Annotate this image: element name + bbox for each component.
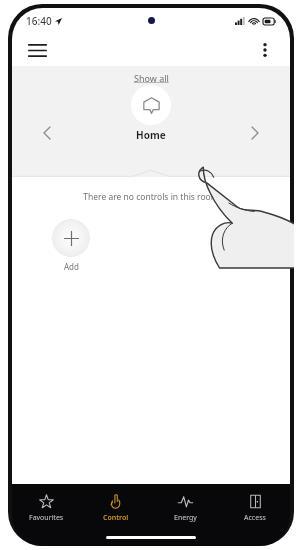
button[interactable]: Favourites — [12, 484, 81, 532]
button[interactable]: Menu — [22, 35, 52, 65]
staticText: There are no controls in this room — [83, 191, 219, 203]
button[interactable]: Control — [81, 484, 150, 532]
staticText: Energy — [174, 513, 197, 523]
staticText: Control — [103, 513, 129, 523]
button[interactable]: Home — [131, 85, 171, 125]
staticText: Favourites — [29, 513, 64, 523]
button[interactable]: Next room — [242, 120, 268, 146]
staticText: Show all — [134, 72, 169, 84]
staticText: Access — [244, 513, 266, 523]
staticText: Add — [64, 261, 79, 272]
button[interactable]: Access — [220, 484, 290, 532]
button[interactable]: Previous room — [34, 120, 60, 146]
button[interactable]: Add — [52, 219, 90, 257]
button[interactable]: More options — [250, 35, 280, 65]
staticText: Home — [136, 128, 166, 142]
staticText: 16:40 — [26, 14, 52, 28]
button[interactable]: Show all — [128, 70, 175, 86]
button[interactable]: Energy — [150, 484, 220, 532]
